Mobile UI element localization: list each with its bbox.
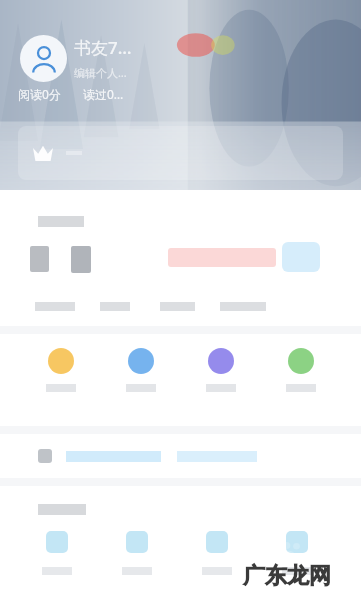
button[interactable]: Tool 3 — [181, 531, 253, 575]
staticText: 编辑个人… — [74, 65, 127, 80]
button[interactable]: Item 3 — [187, 348, 255, 392]
staticText: 阅读0分 — [18, 86, 61, 102]
button[interactable] — [18, 126, 343, 180]
button[interactable]: Item 2 — [107, 348, 175, 392]
staticText: 读过0… — [83, 86, 124, 102]
button[interactable]: Tool 2 — [101, 531, 173, 575]
button[interactable] — [38, 434, 361, 478]
staticText: 书友7… — [74, 36, 132, 59]
button[interactable] — [282, 242, 320, 272]
button[interactable]: Book — [30, 246, 49, 272]
button[interactable]: Tool 4 — [261, 531, 333, 575]
button[interactable]: Item 4 — [267, 348, 335, 392]
staticText: 广东龙网 — [243, 562, 331, 590]
button[interactable]: Book — [71, 246, 91, 273]
button[interactable]: Tool 1 — [21, 531, 93, 575]
button[interactable]: Item 1 — [27, 348, 95, 392]
button[interactable]: 编辑个人… — [74, 65, 127, 80]
button[interactable]: Avatar — [20, 35, 67, 82]
